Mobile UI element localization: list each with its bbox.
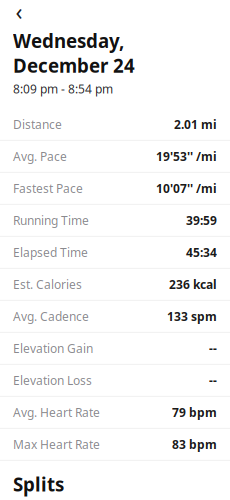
- staticText: Avg. Heart Rate: [13, 404, 100, 420]
- staticText: Elevation Gain: [13, 340, 93, 356]
- staticText: Fastest Pace: [13, 180, 83, 196]
- staticText: 8:09 pm - 8:54 pm: [13, 81, 113, 97]
- staticText: Wednesday, December 24: [13, 28, 135, 78]
- staticText: 236 kcal: [169, 276, 217, 292]
- staticText: 39:59: [186, 212, 217, 228]
- staticText: Avg. Pace: [13, 148, 67, 164]
- staticText: Avg. Cadence: [13, 308, 89, 324]
- staticText: --: [209, 340, 217, 356]
- staticText: ‹: [15, 0, 22, 26]
- staticText: Max Heart Rate: [13, 436, 100, 452]
- staticText: 133 spm: [167, 308, 217, 324]
- staticText: 10'07'' /mi: [156, 180, 217, 196]
- staticText: 83 bpm: [172, 436, 217, 452]
- staticText: Elevation Loss: [13, 372, 92, 388]
- button[interactable]: Back: [4, 0, 34, 23]
- staticText: --: [209, 372, 217, 388]
- staticText: 79 bpm: [172, 404, 217, 420]
- staticText: 45:34: [186, 244, 217, 260]
- staticText: Splits: [13, 472, 64, 497]
- staticText: Elapsed Time: [13, 244, 88, 260]
- staticText: 19'53'' /mi: [156, 148, 217, 164]
- staticText: Est. Calories: [13, 276, 82, 292]
- staticText: Running Time: [13, 212, 89, 228]
- staticText: 2.01 mi: [174, 116, 217, 132]
- staticText: Distance: [13, 116, 62, 132]
